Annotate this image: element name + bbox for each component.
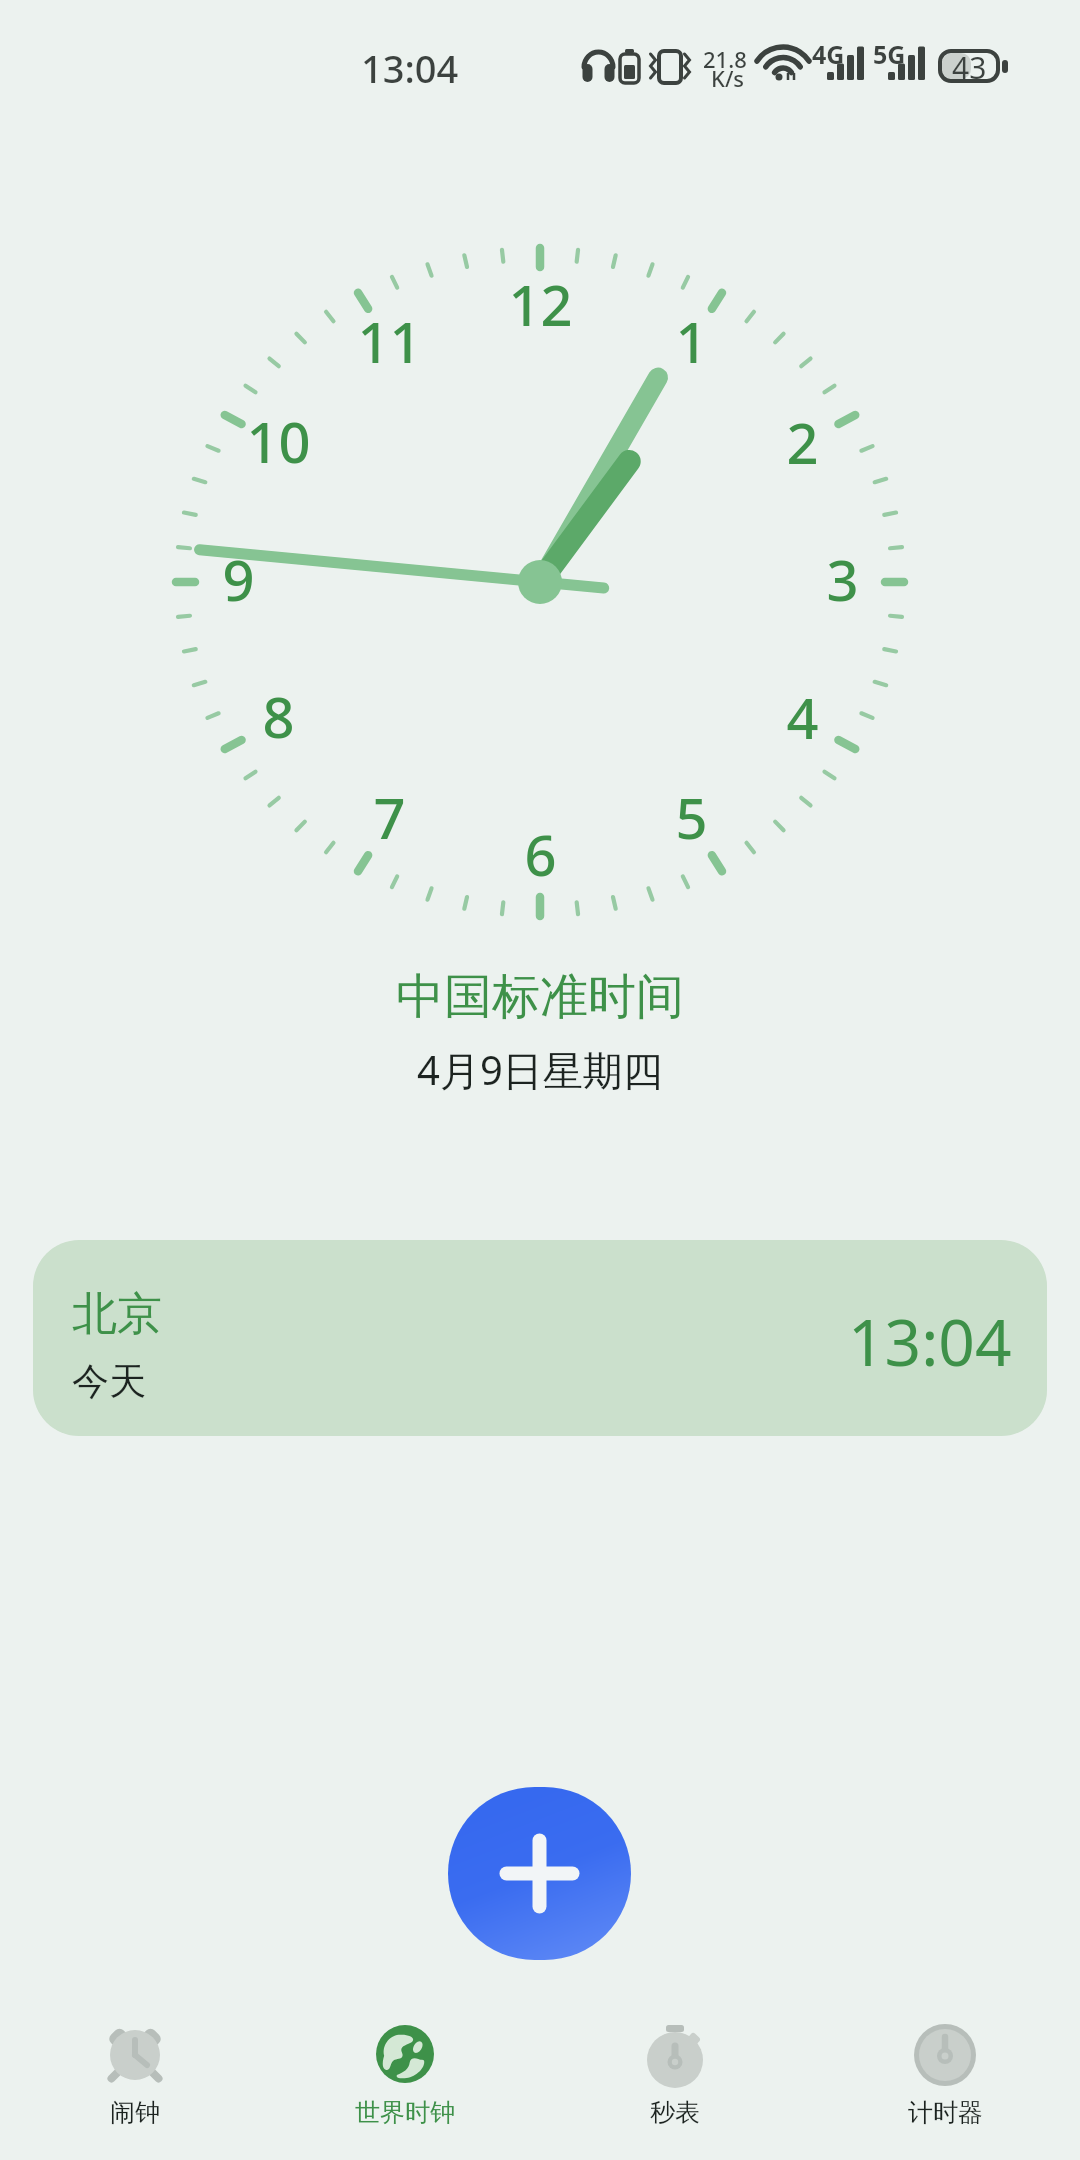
staticText: 13:04 bbox=[848, 1298, 1012, 1385]
staticText: 5 bbox=[675, 779, 708, 855]
staticText: K/s bbox=[711, 63, 745, 93]
button[interactable]: 计时器 bbox=[810, 1986, 1080, 2160]
staticText: 10 bbox=[246, 403, 311, 479]
staticText: 8 bbox=[262, 678, 295, 754]
staticText: 21.8 bbox=[703, 44, 747, 74]
staticText: 11 bbox=[357, 303, 422, 379]
button[interactable]: 世界时钟 bbox=[270, 1986, 540, 2160]
staticText: 9 bbox=[222, 541, 255, 617]
button[interactable]: 秒表 bbox=[540, 1986, 810, 2160]
staticText: 13:04 bbox=[361, 42, 459, 94]
staticText: 3 bbox=[826, 541, 859, 617]
button[interactable]: 闹钟 bbox=[0, 1986, 270, 2160]
staticText: 今天 bbox=[72, 1358, 146, 1405]
staticText: 5G bbox=[873, 37, 906, 71]
staticText: 闹钟 bbox=[110, 2097, 160, 2128]
staticText: 1 bbox=[675, 303, 708, 379]
staticText: 6 bbox=[524, 816, 557, 892]
staticText: 中国标准时间 bbox=[396, 967, 684, 1027]
staticText: 计时器 bbox=[908, 2097, 983, 2128]
button[interactable]: 添加城市 bbox=[448, 1787, 631, 1960]
staticText: 2 bbox=[786, 404, 819, 480]
staticText: 7 bbox=[373, 779, 406, 855]
staticText: 12 bbox=[508, 266, 573, 342]
staticText: 43 bbox=[952, 47, 987, 88]
staticText: 4 bbox=[786, 679, 819, 755]
button[interactable]: 北京 bbox=[33, 1240, 1047, 1436]
staticText: 4月9日星期四 bbox=[417, 1042, 663, 1097]
staticText: 北京 bbox=[72, 1286, 162, 1343]
staticText: 4G bbox=[812, 37, 845, 71]
staticText: 世界时钟 bbox=[355, 2097, 455, 2128]
staticText: 秒表 bbox=[650, 2097, 700, 2128]
